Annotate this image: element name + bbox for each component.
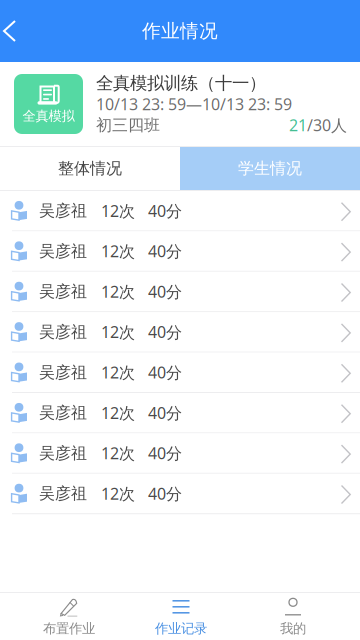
staticText: 吴彦祖 [39, 484, 87, 503]
button[interactable]: 吴彦祖 [0, 231, 360, 271]
staticText: 12次 [101, 362, 135, 383]
staticText: 吴彦祖 [39, 241, 87, 261]
staticText: 吴彦祖 [39, 322, 87, 342]
button[interactable]: 吴彦祖 [0, 312, 360, 352]
staticText: 全真模拟训练（十一） [96, 72, 266, 93]
button[interactable]: Back [0, 9, 46, 53]
staticText: 布置作业 [43, 620, 95, 637]
button[interactable]: 吴彦祖 [0, 272, 360, 311]
staticText: 吴彦祖 [39, 282, 87, 301]
staticText: 40分 [148, 240, 182, 262]
staticText: 我的 [280, 620, 306, 637]
staticText: 40分 [148, 402, 182, 423]
staticText: 21 [289, 114, 307, 136]
staticText: 学生情况 [238, 159, 302, 178]
staticText: 12次 [101, 483, 135, 504]
staticText: 作业情况 [142, 19, 218, 42]
button[interactable]: 吴彦祖 [0, 393, 360, 432]
staticText: 40分 [148, 321, 182, 342]
button[interactable]: 作业记录 [125, 593, 237, 640]
staticText: 40分 [148, 362, 182, 383]
button[interactable]: 吴彦祖 [0, 353, 360, 392]
staticText: 全真模拟 [22, 108, 74, 124]
button[interactable]: 布置作业 [13, 593, 125, 640]
button[interactable]: 学生情况 [180, 147, 360, 190]
button[interactable]: 吴彦祖 [0, 191, 360, 230]
staticText: 作业记录 [155, 620, 207, 637]
button[interactable]: 吴彦祖 [0, 433, 360, 473]
staticText: 12次 [101, 442, 135, 464]
staticText: 10/13 23: 59—10/13 23: 59 [96, 93, 292, 114]
staticText: 12次 [101, 402, 135, 423]
button[interactable]: 整体情况 [0, 147, 180, 190]
staticText: 40分 [148, 442, 182, 464]
staticText: /30人 [307, 114, 347, 136]
staticText: 12次 [101, 321, 135, 342]
staticText: 吴彦祖 [39, 362, 87, 382]
staticText: 吴彦祖 [39, 403, 87, 423]
staticText: 40分 [148, 483, 182, 504]
staticText: 40分 [148, 200, 182, 221]
staticText: 12次 [101, 281, 135, 302]
staticText: 12次 [101, 200, 135, 221]
button[interactable]: 我的 [237, 593, 349, 640]
staticText: 吴彦祖 [39, 201, 87, 221]
button[interactable]: 吴彦祖 [0, 474, 360, 513]
staticText: 吴彦祖 [39, 443, 87, 463]
staticText: 12次 [101, 240, 135, 262]
staticText: 初三四班 [96, 115, 160, 135]
staticText: 整体情况 [58, 159, 122, 178]
staticText: 40分 [148, 281, 182, 302]
